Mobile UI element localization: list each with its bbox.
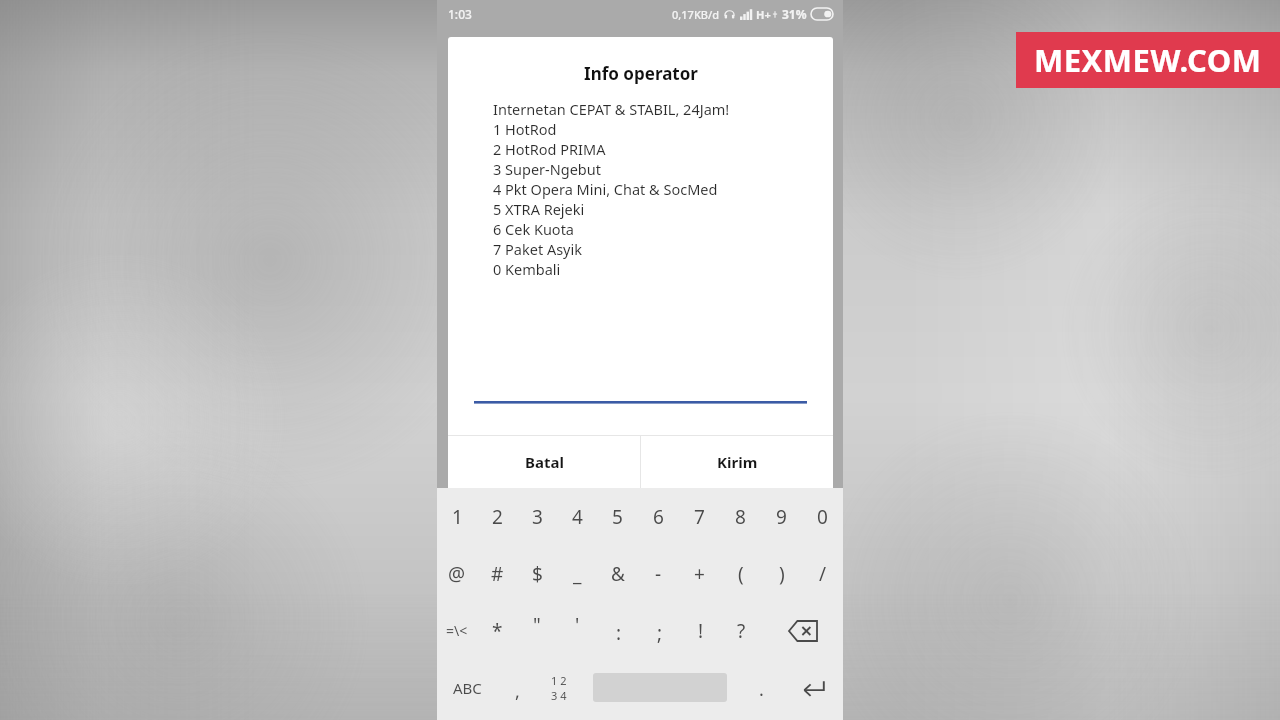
- staticText: ;: [657, 620, 663, 646]
- button[interactable]: =\<: [437, 602, 477, 659]
- staticText: ABC: [453, 678, 482, 698]
- button[interactable]: .: [741, 659, 782, 716]
- staticText: (: [738, 561, 744, 587]
- staticText: ): [779, 561, 785, 587]
- button[interactable]: 1: [437, 488, 477, 545]
- staticText: 0 Kembali: [493, 259, 561, 279]
- button[interactable]: 8: [720, 488, 761, 545]
- staticText: 6 Cek Kuota: [493, 219, 574, 239]
- staticText: _: [573, 561, 582, 587]
- staticText: 3 Super-Ngebut: [493, 159, 601, 179]
- staticText: :: [616, 620, 622, 646]
- staticText: &: [611, 561, 625, 587]
- staticText: 1:03: [448, 6, 472, 22]
- staticText: 2 HotRod PRIMA: [493, 139, 606, 159]
- staticText: ": [533, 612, 541, 638]
- button[interactable]: ): [761, 545, 802, 602]
- button[interactable]: Batal: [448, 436, 640, 488]
- button[interactable]: -: [638, 545, 679, 602]
- button[interactable]: :: [598, 602, 639, 659]
- button[interactable]: +: [679, 545, 720, 602]
- button[interactable]: 2: [477, 488, 517, 545]
- staticText: *: [492, 618, 503, 644]
- button[interactable]: ABC: [437, 659, 497, 716]
- button[interactable]: Kirim: [641, 436, 833, 488]
- staticText: Internetan CEPAT & STABIL, 24Jam!: [493, 99, 730, 119]
- button[interactable]: &: [597, 545, 638, 602]
- staticText: H+: [756, 7, 771, 22]
- button[interactable]: Space: [579, 659, 741, 716]
- button[interactable]: Backspace: [762, 602, 843, 659]
- button[interactable]: *: [477, 602, 517, 659]
- staticText: !: [698, 618, 704, 644]
- staticText: ?: [737, 618, 746, 644]
- staticText: 0: [817, 504, 828, 530]
- staticText: 1: [452, 504, 463, 530]
- button[interactable]: ': [557, 602, 598, 659]
- button[interactable]: @: [437, 545, 477, 602]
- staticText: Info operator: [584, 62, 698, 85]
- staticText: ,: [515, 679, 520, 704]
- button[interactable]: ": [517, 602, 557, 659]
- staticText: 7: [694, 504, 705, 530]
- staticText: 6: [653, 504, 664, 530]
- staticText: +: [694, 561, 705, 587]
- staticText: /: [819, 561, 827, 587]
- staticText: Kirim: [717, 452, 758, 472]
- staticText: 0,17KB/d: [672, 7, 720, 22]
- button[interactable]: (: [720, 545, 761, 602]
- staticText: MEXMEW.COM: [1034, 39, 1262, 81]
- button[interactable]: 4: [557, 488, 597, 545]
- button[interactable]: ;: [639, 602, 680, 659]
- staticText: .: [759, 677, 764, 702]
- staticText: #: [491, 561, 504, 587]
- button[interactable]: $: [517, 545, 557, 602]
- button[interactable]: 6: [638, 488, 679, 545]
- staticText: 2: [492, 504, 503, 530]
- staticText: 8: [735, 504, 746, 530]
- staticText: 1 HotRod: [493, 119, 557, 139]
- staticText: ': [575, 612, 580, 638]
- staticText: 3 4: [551, 688, 567, 703]
- staticText: @: [448, 561, 466, 587]
- staticText: 3: [532, 504, 543, 530]
- staticText: $: [532, 561, 543, 587]
- button[interactable]: ?: [721, 602, 762, 659]
- staticText: 7 Paket Asyik: [493, 239, 582, 259]
- button[interactable]: ,: [497, 659, 538, 716]
- button[interactable]: /: [802, 545, 843, 602]
- staticText: 9: [776, 504, 787, 530]
- button[interactable]: Numbers: [538, 659, 579, 716]
- staticText: 4 Pkt Opera Mini, Chat & SocMed: [493, 179, 718, 199]
- button[interactable]: #: [477, 545, 517, 602]
- button[interactable]: [448, 345, 833, 435]
- button[interactable]: 3: [517, 488, 557, 545]
- button[interactable]: 0: [802, 488, 843, 545]
- staticText: =\<: [446, 621, 468, 640]
- button[interactable]: _: [557, 545, 597, 602]
- button[interactable]: !: [680, 602, 721, 659]
- staticText: 5: [612, 504, 623, 530]
- staticText: 31%: [782, 6, 807, 22]
- button[interactable]: Enter: [782, 659, 843, 716]
- staticText: Batal: [525, 452, 564, 472]
- staticText: 4: [572, 504, 583, 530]
- staticText: 5 XTRA Rejeki: [493, 199, 585, 219]
- staticText: -: [655, 561, 662, 587]
- staticText: 1 2: [551, 673, 567, 688]
- button[interactable]: 5: [597, 488, 638, 545]
- button[interactable]: 7: [679, 488, 720, 545]
- button[interactable]: 9: [761, 488, 802, 545]
